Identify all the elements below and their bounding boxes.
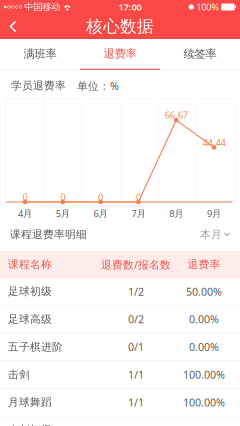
staticText: 6月 [94,207,108,220]
staticText: 100% [196,1,219,13]
staticText: 击剑 [8,368,30,381]
staticText: 0 [60,190,65,203]
staticText: 100.00% [183,395,225,409]
button[interactable]: 月球舞蹈 [0,389,240,416]
staticText: 学员退费率 [11,79,66,92]
button[interactable]: 返回 [0,14,26,39]
staticText: 7月 [131,207,145,220]
staticText: 0.00% [189,340,219,354]
staticText: 0/2 [128,312,144,326]
staticText: 课程名称 [8,258,52,271]
staticText: 五子棋进阶 [8,340,63,354]
staticText: 本月 [200,228,222,241]
staticText: 9月 [207,207,221,220]
staticText: 5月 [56,207,70,220]
button[interactable]: 击剑 [0,361,240,389]
staticText: 0 [22,190,27,203]
staticText: 8月 [169,207,183,220]
staticText: 0 [98,190,103,203]
staticText: 0 [136,190,141,203]
staticText: 足球高级 [8,312,52,326]
staticText: 1/2 [128,284,144,299]
button[interactable]: 足球高级 [0,306,240,333]
button[interactable]: 本月 [200,222,230,247]
button[interactable]: 满班率 [0,39,80,70]
staticText: 核心数据 [86,16,154,37]
staticText: 续签率 [183,47,216,61]
staticText: 退费率 [103,47,136,61]
button[interactable]: 退费率 [80,39,160,70]
staticText: 1/1 [128,395,144,409]
staticText: 退费数/报名数 [101,257,171,272]
staticText: 课程退费率明细 [10,228,87,241]
button[interactable]: 击剑初级 [0,416,240,426]
staticText: 足球初级 [8,285,52,298]
staticText: 50.00% [186,284,222,299]
staticText: 单位：% [77,78,119,93]
staticText: 中国移动 [24,1,60,13]
staticText: 1/1 [128,367,144,382]
button[interactable]: 五子棋进阶 [0,333,240,361]
staticText: 4月 [18,207,32,220]
button[interactable]: 足球初级 [0,278,240,306]
staticText: 17:00 [118,1,141,13]
staticText: 击剑初级 [8,423,52,426]
staticText: 100.00% [183,367,225,382]
staticText: 44.44 [202,136,225,149]
button[interactable]: 续签率 [160,39,240,70]
staticText: 月球舞蹈 [8,396,52,409]
staticText: 0/1 [128,340,144,354]
staticText: 0.00% [189,312,219,326]
staticText: 66.67 [165,109,188,121]
staticText: 退费率 [187,258,220,271]
staticText: 满班率 [23,47,56,61]
